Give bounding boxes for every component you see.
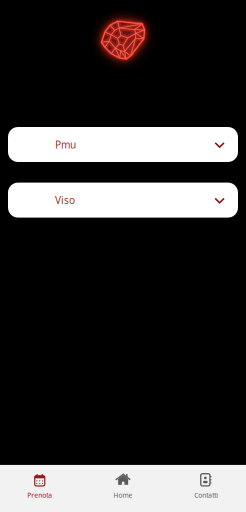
staticText: Pmu bbox=[55, 138, 76, 151]
button[interactable]: Prenota bbox=[0, 465, 79, 512]
staticText: Viso bbox=[55, 193, 75, 207]
staticText: Contatti bbox=[194, 491, 218, 500]
staticText: Home bbox=[113, 491, 132, 500]
button[interactable]: Contatti bbox=[166, 465, 246, 512]
staticText: Prenota bbox=[27, 491, 52, 500]
button[interactable]: Pmu bbox=[8, 127, 238, 162]
button[interactable]: Viso bbox=[8, 183, 238, 218]
button[interactable]: Home bbox=[79, 465, 166, 512]
